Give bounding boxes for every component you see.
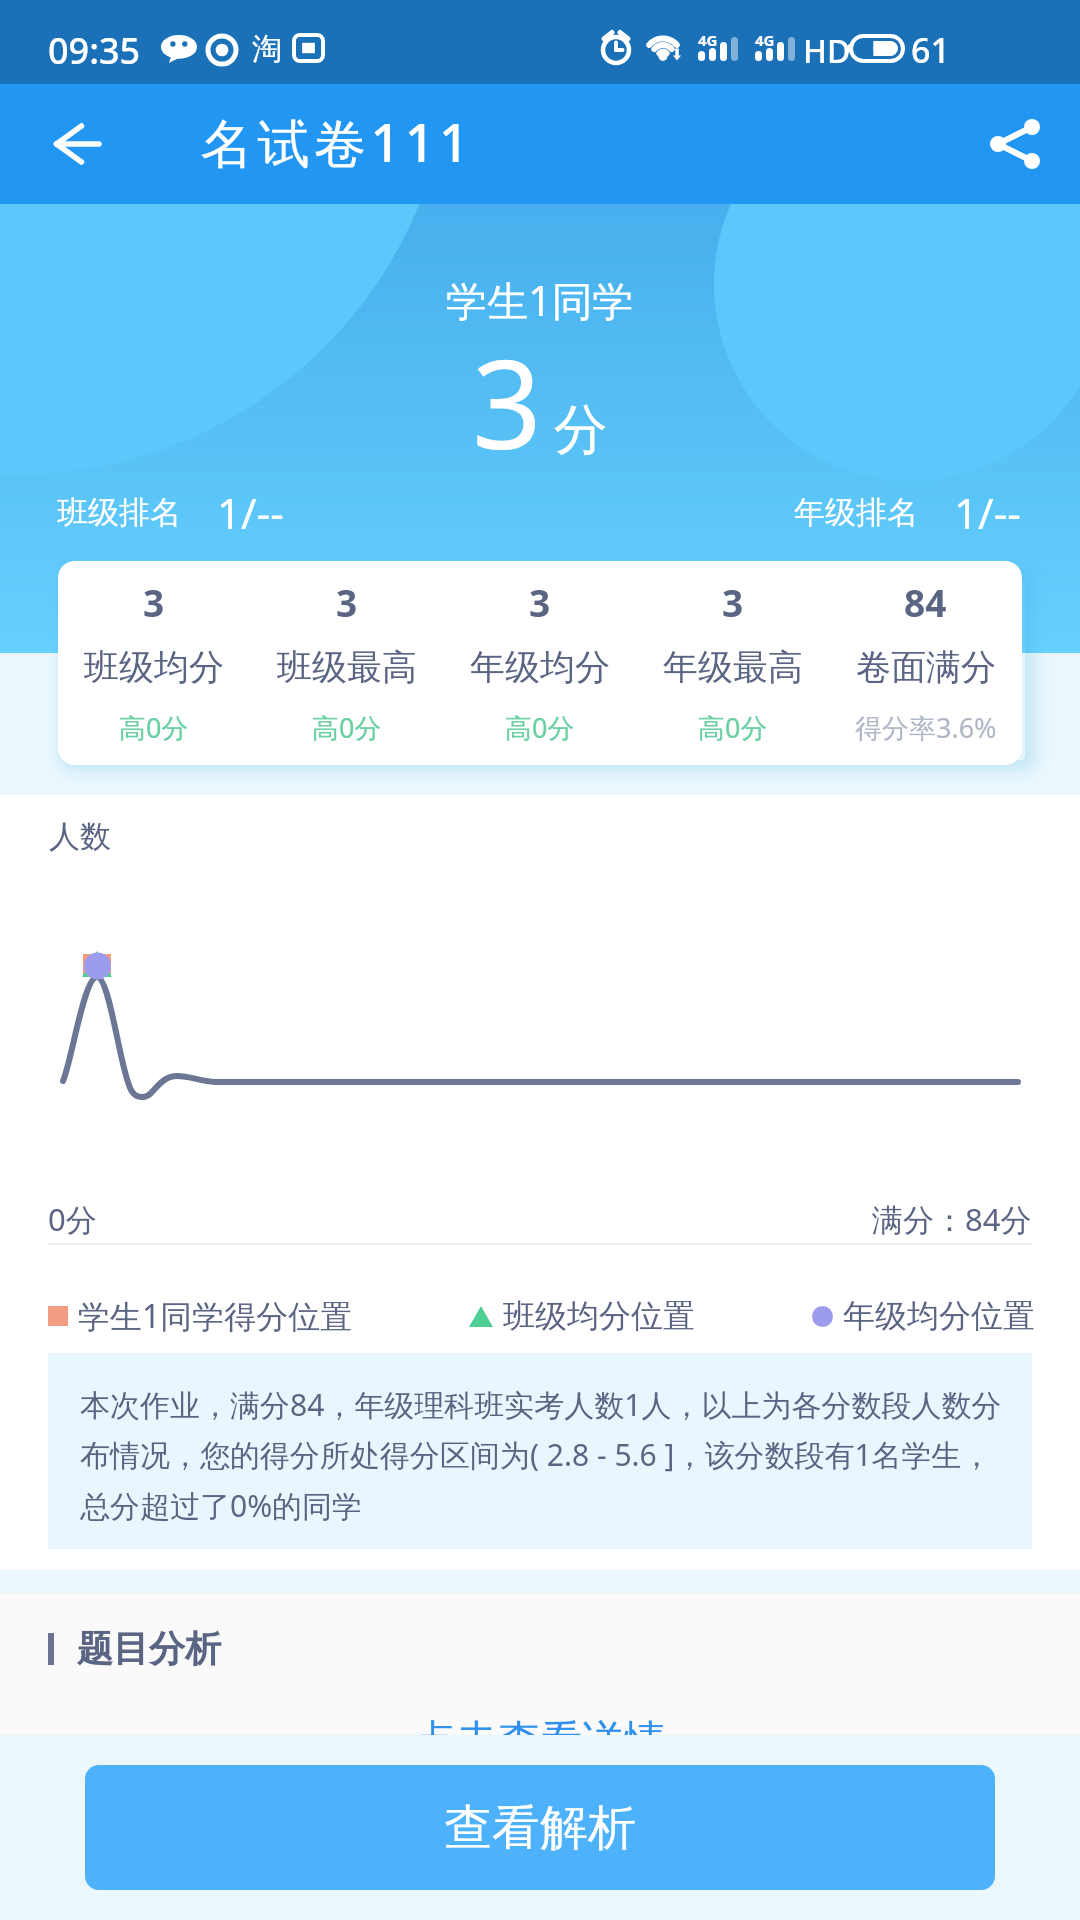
staticText: 班级最高 xyxy=(277,645,417,689)
staticText: 年级最高 xyxy=(663,645,803,689)
staticText: 年级均分位置 xyxy=(843,1296,1035,1336)
staticText: 淘 xyxy=(252,30,282,68)
staticText: 3 xyxy=(529,577,551,627)
staticText: 分 xyxy=(554,396,608,464)
staticText: 高0分 xyxy=(312,709,382,746)
staticText: 84 xyxy=(904,577,947,627)
staticText: 满分：84分 xyxy=(872,1198,1032,1240)
staticText: 1/-- xyxy=(217,484,284,541)
staticText: 高0分 xyxy=(698,709,768,746)
staticText: 班级均分位置 xyxy=(503,1296,695,1336)
staticText: 班级均分 xyxy=(84,645,224,689)
staticText: 年级均分 xyxy=(470,645,610,689)
staticText: 1/-- xyxy=(954,484,1021,541)
staticText: 卷面满分 xyxy=(856,645,996,689)
staticText: 人数 xyxy=(49,817,111,856)
staticText: 查看解析 xyxy=(444,1798,636,1858)
staticText: 高0分 xyxy=(119,709,189,746)
staticText: 3 xyxy=(336,577,358,627)
staticText: 4G xyxy=(698,30,718,50)
staticText: 本次作业，满分84，年级理科班实考人数1人，以上为各分数段人数分 布情况，您的得… xyxy=(80,1384,1002,1526)
staticText: 0分 xyxy=(48,1198,97,1240)
staticText: 09:35 xyxy=(48,26,141,75)
staticText: HD xyxy=(803,29,851,73)
button[interactable]: Share xyxy=(960,84,1080,204)
staticText: 3 xyxy=(143,577,165,627)
button[interactable]: Back xyxy=(22,84,132,204)
staticText: 3 xyxy=(722,577,744,627)
staticText: 学生1同学得分位置 xyxy=(78,1294,353,1338)
staticText: 点击查看详情 xyxy=(414,1715,666,1735)
staticText: 名试卷111 xyxy=(201,106,474,177)
staticText: 年级排名 xyxy=(794,493,918,532)
staticText: 3 xyxy=(472,319,542,485)
staticText: 题目分析 xyxy=(77,1626,221,1671)
staticText: 61 xyxy=(911,27,950,73)
staticText: 4G xyxy=(755,30,775,50)
staticText: 班级排名 xyxy=(57,493,181,532)
staticText: 高0分 xyxy=(505,709,575,746)
staticText: 学生1同学 xyxy=(446,272,634,328)
button[interactable]: 查看解析 xyxy=(85,1765,995,1890)
staticText: 得分率3.6% xyxy=(855,709,997,746)
